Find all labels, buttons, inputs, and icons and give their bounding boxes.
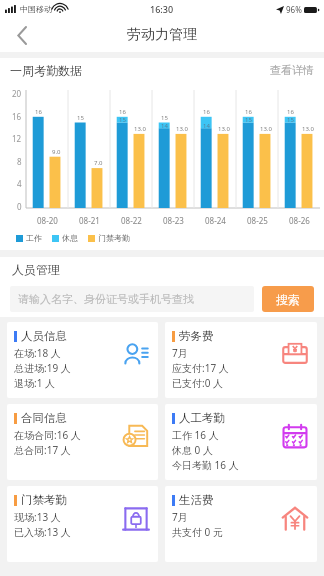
staticText: 16: [119, 108, 126, 116]
staticText: 休息: [62, 233, 78, 243]
staticText: 查看详情: [270, 63, 314, 77]
staticText: 16: [245, 108, 252, 116]
button[interactable]: 合同信息: [7, 404, 158, 480]
staticText: 在场:18 人: [14, 346, 61, 360]
staticText: 08-26: [289, 215, 310, 226]
staticText: 0: [17, 201, 22, 212]
staticText: 96%: [286, 4, 302, 15]
staticText: 劳动力管理: [127, 26, 197, 44]
staticText: 退场:1 人: [14, 376, 55, 390]
button[interactable]: 生活费: [165, 486, 317, 562]
staticText: 08-24: [205, 215, 226, 226]
staticText: 15: [245, 116, 252, 124]
button[interactable]: 人工考勤: [165, 404, 317, 480]
staticText: 合同信息: [21, 411, 67, 425]
staticText: 人工考勤: [179, 411, 225, 425]
staticText: 总合同:17 人: [14, 443, 71, 457]
staticText: 9.0: [52, 148, 61, 156]
staticText: 搜索: [276, 292, 300, 307]
staticText: 14: [161, 122, 168, 130]
staticText: 工作 16 人: [172, 428, 219, 442]
staticText: 已入场:13 人: [14, 525, 71, 539]
staticText: 16: [287, 108, 294, 116]
staticText: 15: [119, 116, 126, 124]
button[interactable]: 请输入名字、身份证号或手机号查找: [10, 286, 254, 312]
staticText: 4: [17, 178, 22, 189]
staticText: 8: [17, 156, 22, 167]
staticText: 在场合同:16 人: [14, 428, 81, 442]
staticText: 13.0: [260, 125, 272, 133]
staticText: 一周考勤数据: [10, 63, 82, 78]
button[interactable]: 人员信息: [7, 322, 158, 398]
staticText: 休息 0 人: [172, 443, 213, 457]
staticText: 7月: [172, 510, 188, 524]
button[interactable]: 查看详情: [270, 63, 314, 77]
staticText: 20: [12, 88, 22, 99]
staticText: 中国移动: [20, 4, 52, 14]
staticText: 08-21: [79, 215, 100, 226]
button[interactable]: 门禁考勤: [7, 486, 158, 562]
staticText: 门禁考勤: [21, 493, 67, 507]
staticText: 08-23: [163, 215, 184, 226]
staticText: 共支付 0 元: [172, 525, 223, 539]
staticText: 13.0: [302, 125, 314, 133]
staticText: 请输入名字、身份证号或手机号查找: [18, 292, 194, 306]
staticText: 人员管理: [12, 262, 60, 277]
button[interactable]: 劳务费: [165, 322, 317, 398]
staticText: 总进场:19 人: [14, 361, 71, 375]
staticText: 12: [12, 133, 22, 144]
staticText: 08-25: [247, 215, 268, 226]
staticText: 7月: [172, 346, 188, 360]
staticText: 门禁考勤: [98, 233, 130, 243]
staticText: 15: [287, 116, 294, 124]
staticText: 15: [77, 114, 84, 122]
staticText: 08-22: [121, 215, 142, 226]
staticText: 工作: [26, 233, 42, 243]
staticText: 7.0: [94, 159, 103, 167]
staticText: 应支付:17 人: [172, 361, 229, 375]
staticText: 16:30: [150, 3, 174, 15]
staticText: 14: [203, 122, 210, 130]
staticText: 13.0: [218, 125, 230, 133]
staticText: 人员信息: [21, 329, 67, 343]
staticText: 16: [203, 108, 210, 116]
staticText: 08-20: [37, 215, 58, 226]
button[interactable]: Back: [8, 21, 36, 49]
staticText: 16: [35, 108, 42, 116]
button[interactable]: 搜索: [262, 286, 314, 312]
staticText: 13.0: [134, 125, 146, 133]
staticText: 已支付:0 人: [172, 376, 223, 390]
staticText: 13.0: [176, 125, 188, 133]
staticText: 15: [161, 114, 168, 122]
staticText: 劳务费: [179, 329, 214, 343]
staticText: 16: [12, 111, 22, 122]
staticText: 现场:13 人: [14, 510, 61, 524]
staticText: 生活费: [179, 493, 214, 507]
staticText: 今日考勤 16 人: [172, 458, 239, 472]
